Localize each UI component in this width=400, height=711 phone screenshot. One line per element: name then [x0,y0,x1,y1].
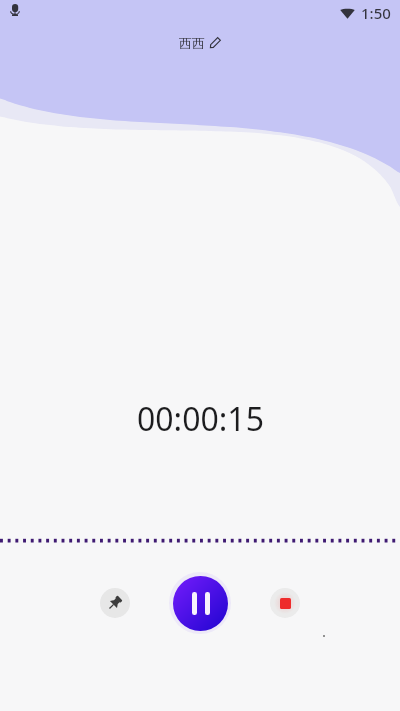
button[interactable]: Stop recording [270,588,300,618]
staticText: 1:50 [361,3,391,23]
other: Edit recording name [210,37,221,48]
staticText: 00:00:15 [137,397,264,441]
button[interactable]: Pause recording [173,576,228,631]
other: Microphone in use [10,4,20,16]
staticText: 西西 [179,35,205,51]
button[interactable]: Add marker [100,588,130,618]
